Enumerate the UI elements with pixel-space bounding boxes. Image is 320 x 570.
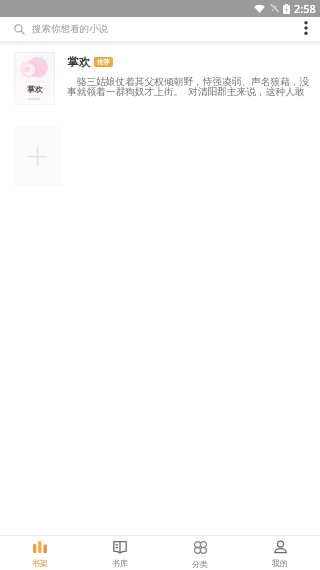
staticText: 掌欢 xyxy=(27,84,43,94)
button[interactable]: More options xyxy=(292,17,320,41)
staticText: 骆三姑娘仗着其父权倾朝野，恃强凌弱、声名狼藉，没事就领着一群狗奴才上街。 对清阳… xyxy=(67,75,311,98)
staticText: 2:58 xyxy=(294,1,316,16)
staticText: 推荐 xyxy=(97,58,110,66)
button[interactable]: 书架 xyxy=(0,536,80,570)
staticText: 书架 xyxy=(32,558,48,568)
button[interactable]: 我的 xyxy=(240,536,320,570)
staticText: 分类 xyxy=(192,559,208,569)
button[interactable]: 书库 xyxy=(80,536,160,570)
button[interactable]: 掌欢 xyxy=(0,52,320,105)
staticText: 掌欢 xyxy=(67,55,90,69)
staticText: 我的 xyxy=(272,558,288,568)
staticText: 书库 xyxy=(112,558,128,568)
button[interactable]: 分类 xyxy=(160,536,240,570)
staticText: 搜索你想看的小说 xyxy=(32,23,108,35)
